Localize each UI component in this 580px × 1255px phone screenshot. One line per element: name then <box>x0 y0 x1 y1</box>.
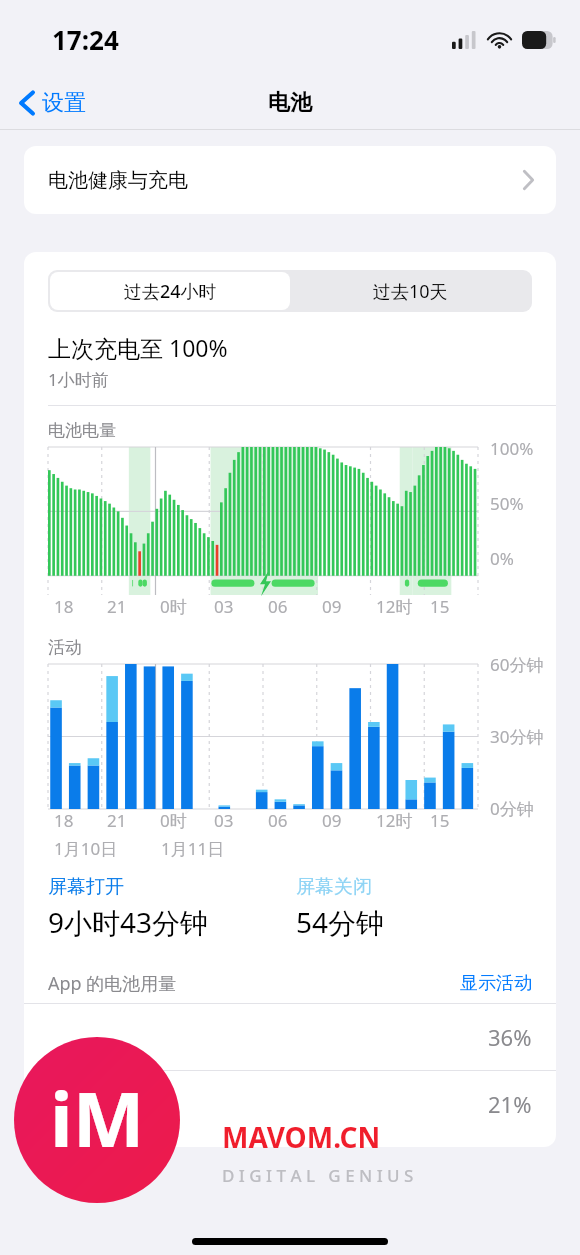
staticText: 54分钟 <box>296 903 385 941</box>
staticText: 36% <box>488 1022 532 1052</box>
staticText: 12时 <box>376 595 413 618</box>
staticText: 21% <box>488 1089 532 1119</box>
button[interactable]: 36% <box>24 1004 556 1070</box>
button[interactable]: 电池健康与充电 <box>24 146 556 214</box>
button[interactable]: 21% <box>24 1071 556 1137</box>
staticText: 9小时43分钟 <box>48 903 209 941</box>
staticText: 0分钟 <box>490 797 534 820</box>
staticText: 1月11日 <box>161 837 225 860</box>
staticText: 屏幕关闭 <box>296 875 372 899</box>
button[interactable]: 设置 <box>16 85 90 121</box>
staticText: 09 <box>322 809 342 832</box>
other: 活动图表 <box>48 664 478 809</box>
staticText: 30分钟 <box>490 725 544 748</box>
staticText: 06 <box>268 595 288 618</box>
staticText: 电池 <box>268 89 312 117</box>
staticText: 06 <box>268 809 288 832</box>
staticText: 0时 <box>160 809 187 832</box>
staticText: 电池健康与充电 <box>48 168 188 193</box>
staticText: 15 <box>430 595 450 618</box>
staticText: 60分钟 <box>490 653 544 676</box>
staticText: 0% <box>490 547 514 570</box>
button[interactable]: 过去10天 <box>290 272 530 310</box>
button[interactable]: 显示活动 <box>436 968 556 999</box>
staticText: 电池电量 <box>48 420 116 441</box>
staticText: 0时 <box>160 595 187 618</box>
staticText: MAVOM.CN <box>222 1118 381 1156</box>
staticText: 活动 <box>48 637 82 658</box>
staticText: 09 <box>322 595 342 618</box>
staticText: 03 <box>214 809 234 832</box>
staticText: App 的电池用量 <box>48 971 177 996</box>
staticText: 1月10日 <box>54 837 118 860</box>
staticText: 显示活动 <box>460 972 532 995</box>
staticText: 15 <box>430 809 450 832</box>
staticText: 上次充电至 100% <box>48 332 228 363</box>
staticText: 12时 <box>376 809 413 832</box>
button[interactable]: 过去24小时 <box>50 272 290 310</box>
staticText: 18 <box>54 595 74 618</box>
staticText: 屏幕打开 <box>48 875 124 899</box>
staticText: 18 <box>54 809 74 832</box>
staticText: iM <box>50 1066 145 1170</box>
staticText: 17:24 <box>52 22 119 57</box>
staticText: D I G I T A L G E N I U S <box>222 1164 414 1187</box>
staticText: 03 <box>214 595 234 618</box>
staticText: 100% <box>490 437 534 460</box>
staticText: 21 <box>107 595 127 618</box>
staticText: 1小时前 <box>48 368 109 391</box>
staticText: 过去24小时 <box>124 279 217 304</box>
staticText: 21 <box>107 809 127 832</box>
staticText: 过去10天 <box>373 279 448 304</box>
staticText: 50% <box>490 492 524 515</box>
other: 电池电量图表 <box>48 447 478 595</box>
staticText: 设置 <box>42 89 86 117</box>
